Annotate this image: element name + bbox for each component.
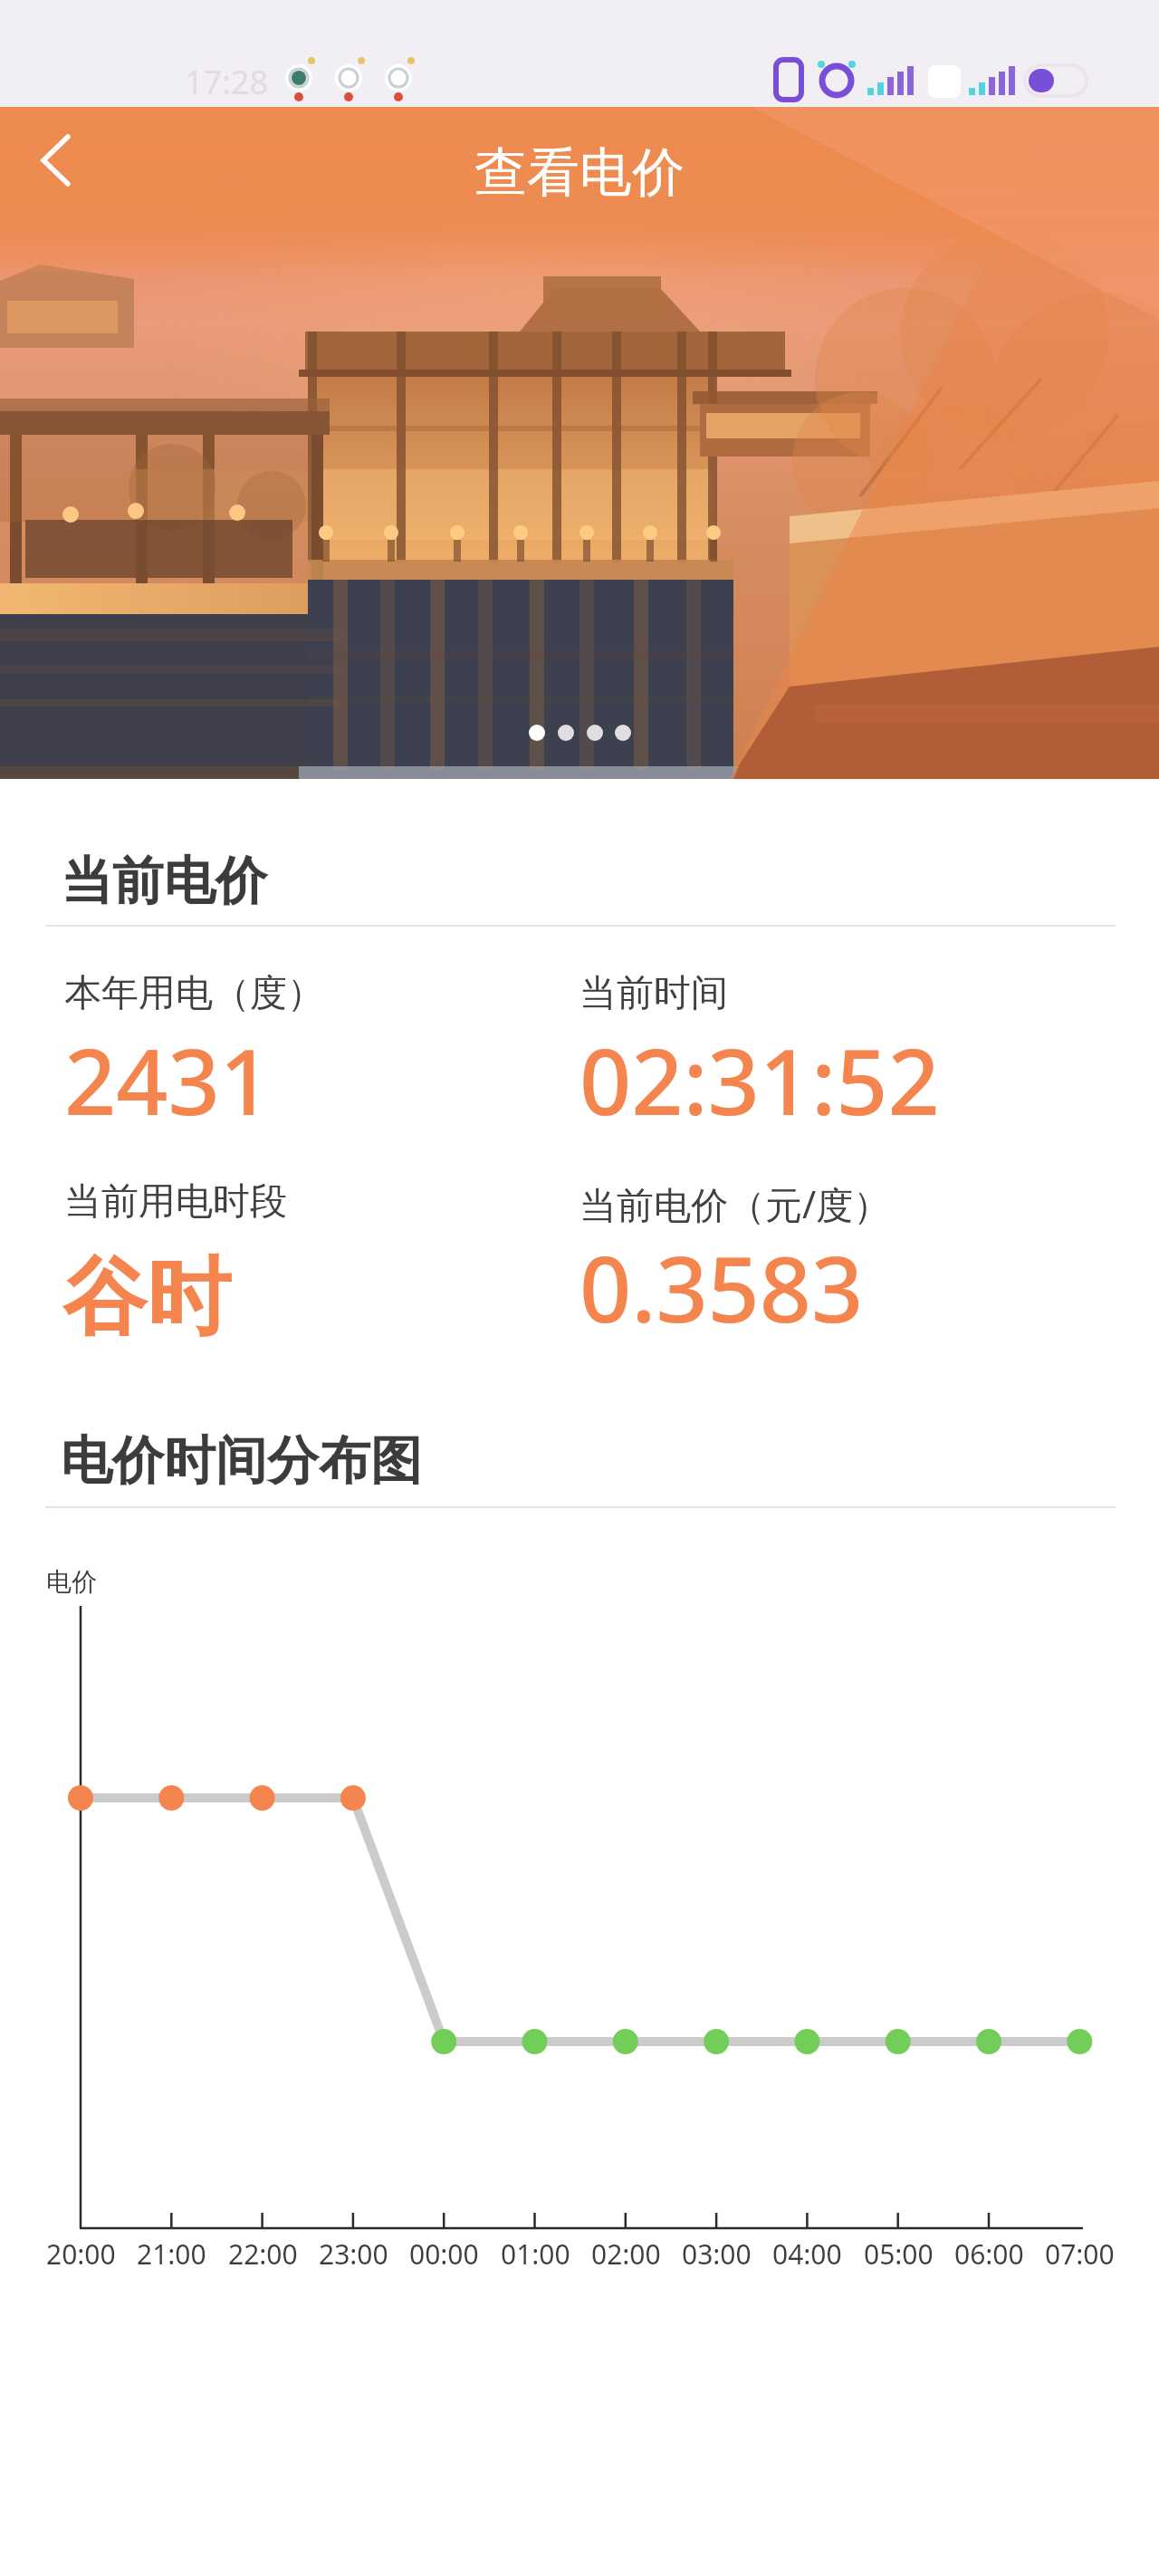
staticText: 04:00 — [772, 2235, 842, 2273]
staticText: 23:00 — [319, 2235, 388, 2273]
staticText: 21:00 — [137, 2235, 206, 2273]
staticText: 02:31:52 — [579, 1018, 940, 1141]
staticText: 0.3583 — [579, 1226, 864, 1349]
staticText: 17:28 — [185, 60, 269, 104]
staticText: 20:00 — [46, 2235, 116, 2273]
staticText: 谷时 — [62, 1245, 231, 1350]
staticText: 电价时间分布图 — [61, 1428, 422, 1494]
staticText: 01:00 — [501, 2235, 570, 2273]
staticText: 05:00 — [864, 2235, 934, 2273]
staticText: 本年用电（度） — [64, 970, 324, 1017]
staticText: 22:00 — [228, 2235, 298, 2273]
staticText: 电价 — [46, 1566, 97, 1598]
staticText: 当前用电时段 — [64, 1178, 287, 1226]
staticText: 查看电价 — [474, 139, 685, 206]
staticText: 当前时间 — [579, 970, 728, 1017]
staticText: 03:00 — [682, 2235, 752, 2273]
button[interactable] — [16, 121, 94, 199]
staticText: 00:00 — [409, 2235, 479, 2273]
staticText: 2431 — [64, 1018, 272, 1141]
staticText: 当前电价（元/度） — [579, 1178, 891, 1229]
staticText: 06:00 — [954, 2235, 1024, 2273]
staticText: 02:00 — [591, 2235, 661, 2273]
staticText: 当前电价 — [61, 849, 267, 914]
staticText: 07:00 — [1045, 2235, 1115, 2273]
